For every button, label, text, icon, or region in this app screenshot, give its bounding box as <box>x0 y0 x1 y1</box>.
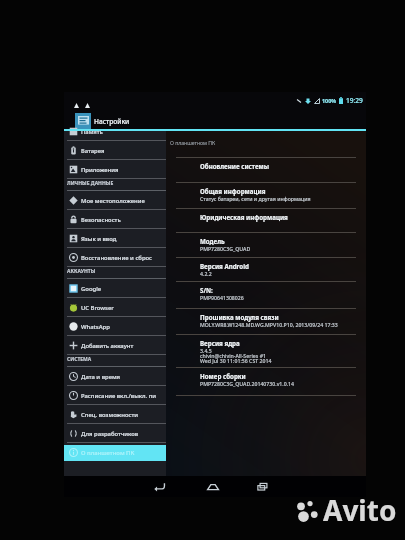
staticText: Wed Jul 30 11:01:56 CST 2014 <box>200 357 272 364</box>
staticText: О планшетном ПК <box>170 140 216 147</box>
button[interactable]: Back <box>149 476 170 497</box>
staticText: О планшетном ПК <box>81 449 135 457</box>
button[interactable]: О планшетном ПК <box>64 443 166 462</box>
button[interactable]: Мое местоположение <box>64 191 166 210</box>
staticText: WhatsApp <box>81 323 110 331</box>
staticText: Восстановление и сброс <box>81 254 153 262</box>
staticText: Для разработчиков <box>81 430 139 438</box>
staticText: S/N: <box>200 286 213 294</box>
staticText: Мое местоположение <box>81 197 145 205</box>
staticText: Google <box>81 285 102 293</box>
button[interactable]: Приложения <box>64 160 166 179</box>
staticText: Язык и ввод <box>81 235 117 243</box>
staticText: chivin@chivin-All-Series #1 <box>200 352 266 359</box>
button[interactable]: Юридическая информация <box>166 209 366 232</box>
staticText: Расписание вкл./выкл. пи <box>81 392 157 400</box>
button[interactable]: Батарея <box>64 141 166 160</box>
staticText: Батарея <box>81 147 105 155</box>
staticText: Статус батареи, сети и другая информация <box>200 195 311 202</box>
staticText: Добавить аккаунт <box>81 342 134 350</box>
button[interactable]: Обновление системы <box>166 158 366 182</box>
button[interactable]: Добавить аккаунт <box>64 336 166 355</box>
staticText: 100% <box>322 97 337 104</box>
staticText: Приложения <box>81 166 119 174</box>
button[interactable]: WhatsApp <box>64 317 166 336</box>
staticText: Avito <box>323 491 397 529</box>
staticText: Модель <box>200 237 225 245</box>
staticText: Память <box>81 128 103 136</box>
button[interactable]: Дата и время <box>64 367 166 386</box>
button[interactable]: Язык и ввод <box>64 229 166 248</box>
button[interactable]: Безопасность <box>64 210 166 229</box>
button[interactable]: Прошивка модуля связи <box>166 309 366 334</box>
button[interactable]: Recents <box>252 476 273 497</box>
button[interactable]: Для разработчиков <box>64 424 166 443</box>
staticText: 4.2.2 <box>200 270 212 277</box>
button[interactable]: Память <box>64 122 166 141</box>
button[interactable]: S/N: <box>166 282 366 308</box>
staticText: 19:29 <box>346 96 363 105</box>
staticText: АККАУНТЫ <box>67 268 96 275</box>
staticText: UC Browser <box>81 304 114 312</box>
staticText: PMP7280C3G_QUAD <box>200 245 251 252</box>
button[interactable]: Расписание вкл./выкл. пи <box>64 386 166 405</box>
button[interactable]: Спец. возможности <box>64 405 166 424</box>
button[interactable]: Общая информация <box>166 183 366 208</box>
staticText: Спец. возможности <box>81 411 138 419</box>
staticText: Версия Android <box>200 262 249 270</box>
staticText: Юридическая информация <box>200 213 288 221</box>
button[interactable]: Восстановление и сброс <box>64 248 166 267</box>
staticText: Общая информация <box>200 187 266 195</box>
staticText: Прошивка модуля связи <box>200 313 279 321</box>
staticText: PMP90641308026 <box>200 294 244 301</box>
staticText: Безопасность <box>81 216 121 224</box>
staticText: Обновление системы <box>200 162 269 170</box>
staticText: Версия ядра <box>200 339 240 347</box>
staticText: ЛИЧНЫЕ ДАННЫЕ <box>67 180 114 187</box>
button[interactable]: Home <box>202 476 223 497</box>
button[interactable]: UC Browser <box>64 298 166 317</box>
staticText: MOLY.WR8.W1248.MD.WG.MPV10.P10, 2013/09/… <box>200 321 338 328</box>
button[interactable]: Номер сборки <box>166 368 366 395</box>
button[interactable]: Google <box>64 279 166 298</box>
button[interactable]: Модель <box>166 233 366 257</box>
staticText: СИСТЕМА <box>67 356 92 363</box>
staticText: Номер сборки <box>200 372 246 380</box>
button[interactable]: Версия Android <box>166 258 366 281</box>
staticText: 3.4.5 <box>200 347 212 354</box>
button[interactable]: Версия ядра <box>166 335 366 367</box>
staticText: Настройки <box>94 117 130 126</box>
staticText: Дата и время <box>81 373 121 381</box>
staticText: PMP7280C3G_QUAD.20140730.v1.0.14 <box>200 380 295 387</box>
